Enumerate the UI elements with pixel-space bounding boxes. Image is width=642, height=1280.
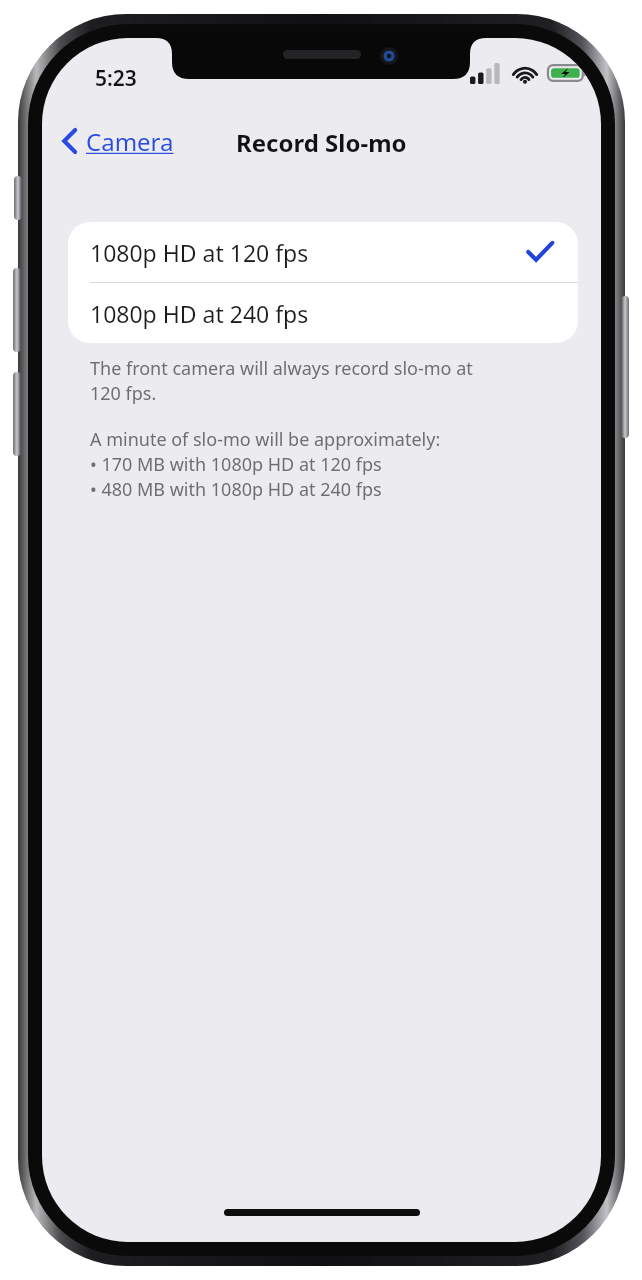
staticText: 120 fps. <box>90 381 157 406</box>
button[interactable]: 1080p HD at 240 fps <box>68 283 578 343</box>
staticText: • 170 MB with 1080p HD at 120 fps <box>90 452 382 477</box>
staticText: The front camera will always record slo-… <box>90 356 473 381</box>
staticText: 1080p HD at 240 fps <box>90 298 309 329</box>
button[interactable]: Camera <box>56 120 180 162</box>
staticText: 1080p HD at 120 fps <box>90 237 309 268</box>
button[interactable]: 1080p HD at 120 fps <box>68 222 578 282</box>
staticText: Camera <box>86 125 174 158</box>
staticText: A minute of slo-mo will be approximately… <box>90 427 441 452</box>
staticText: • 480 MB with 1080p HD at 240 fps <box>90 477 382 502</box>
staticText: 5:23 <box>95 64 137 93</box>
staticText: Record Slo-mo <box>236 126 407 159</box>
